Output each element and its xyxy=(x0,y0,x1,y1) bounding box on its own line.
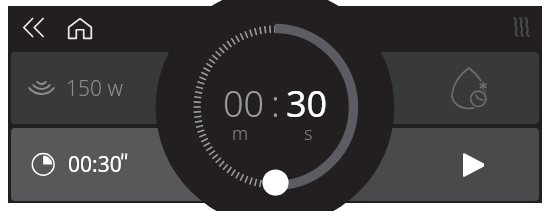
staticText: m xyxy=(232,121,249,146)
button[interactable]: Back xyxy=(15,10,52,45)
button[interactable]: Steam clean xyxy=(448,60,500,116)
button[interactable] xyxy=(11,52,539,124)
staticText: s xyxy=(304,121,313,146)
button[interactable]: Steam xyxy=(504,10,538,44)
staticText: : xyxy=(271,79,280,128)
button[interactable] xyxy=(11,128,273,201)
staticText: 00 xyxy=(223,79,265,128)
button[interactable]: Start xyxy=(455,146,493,184)
staticText: 00:30 xyxy=(68,150,122,179)
button[interactable] xyxy=(277,128,539,201)
button[interactable]: Home xyxy=(62,11,98,45)
staticText: 150 w xyxy=(66,74,123,103)
staticText: 30 xyxy=(286,79,328,128)
